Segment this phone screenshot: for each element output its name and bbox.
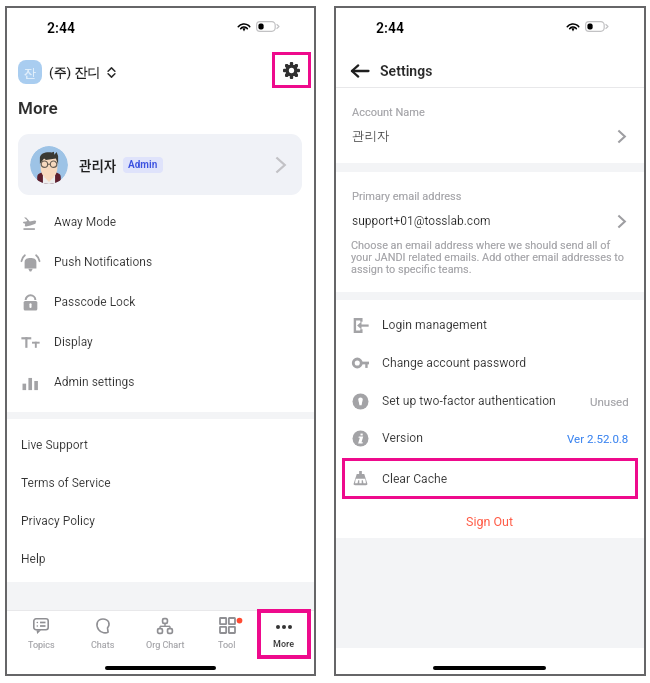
button[interactable]: Set up two-factor authentication	[334, 382, 646, 420]
staticText: 2:44	[376, 20, 405, 36]
button[interactable]: Settings	[272, 52, 311, 88]
staticText: Choose an email address where we should …	[351, 239, 629, 276]
button[interactable]: Version	[334, 419, 646, 457]
staticText: Account Name	[352, 106, 425, 119]
staticText: Privacy Policy	[21, 514, 95, 528]
button[interactable]: Org Chart	[138, 611, 192, 659]
button[interactable]: Chats	[76, 611, 130, 659]
staticText: Change account password	[382, 356, 527, 370]
button[interactable]: Back	[345, 56, 375, 86]
button[interactable]: Topics	[14, 611, 68, 659]
staticText: 관리자	[79, 155, 117, 175]
button[interactable]: Away Mode	[5, 202, 316, 242]
button[interactable]: More	[257, 609, 311, 659]
staticText: Clear Cache	[382, 472, 448, 486]
staticText: Settings	[380, 63, 433, 79]
button[interactable]: Login management	[334, 306, 646, 344]
staticText: Unused	[590, 395, 629, 408]
button[interactable]: Sign Out	[334, 505, 646, 538]
staticText: More	[18, 98, 58, 118]
button[interactable]: Clear Cache	[342, 458, 638, 499]
button[interactable]: Tool	[200, 611, 254, 659]
staticText: Display	[54, 335, 93, 349]
staticText: Admin settings	[54, 375, 135, 389]
staticText: Help	[21, 552, 46, 566]
staticText: Live Support	[21, 438, 88, 452]
staticText: Primary email address	[352, 190, 462, 203]
button[interactable]: Account Name	[334, 94, 646, 163]
button[interactable]: Admin settings	[5, 362, 316, 402]
staticText: Ver 2.52.0.8	[567, 432, 629, 445]
button[interactable]: Privacy Policy	[5, 502, 316, 540]
staticText: More	[273, 639, 295, 650]
staticText: Org Chart	[146, 640, 185, 651]
button[interactable]: Live Support	[5, 426, 316, 464]
button[interactable]: 관리자	[18, 134, 302, 195]
staticText: Passcode Lock	[54, 295, 136, 309]
staticText: Terms of Service	[21, 476, 111, 490]
button[interactable]: Terms of Service	[5, 464, 316, 502]
staticText: Chats	[91, 640, 115, 651]
staticText: Sign Out	[466, 514, 514, 529]
staticText: Set up two-factor authentication	[382, 394, 556, 408]
button[interactable]: 잔	[18, 52, 188, 92]
staticText: (주) 잔디	[49, 64, 101, 80]
button[interactable]: Display	[5, 322, 316, 362]
button[interactable]: Help	[5, 540, 316, 578]
staticText: support+01@tosslab.com	[352, 214, 491, 228]
staticText: 2:44	[47, 20, 76, 36]
button[interactable]: Change account password	[334, 344, 646, 382]
button[interactable]: Passcode Lock	[5, 282, 316, 322]
staticText: Tool	[218, 640, 236, 651]
staticText: Away Mode	[54, 215, 117, 229]
staticText: Topics	[28, 640, 55, 651]
staticText: Version	[382, 431, 424, 445]
button[interactable]: Push Notifications	[5, 242, 316, 282]
staticText: Login management	[382, 318, 487, 332]
button[interactable]: support+01@tosslab.com	[334, 208, 646, 234]
staticText: Push Notifications	[54, 255, 153, 269]
staticText: Admin	[128, 159, 158, 171]
staticText: 관리자	[352, 128, 390, 144]
staticText: 잔	[24, 65, 36, 80]
